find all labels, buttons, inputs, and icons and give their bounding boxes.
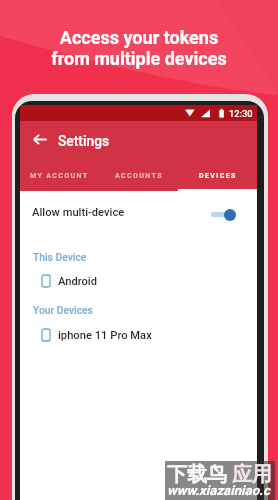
staticText: MY ACCOUNT	[30, 172, 89, 180]
staticText: Allow multi-device	[32, 206, 125, 219]
staticText: iphone 11 Pro Max	[58, 329, 152, 342]
staticText: 12:30	[229, 108, 253, 119]
button[interactable]: Back	[26, 128, 52, 154]
button[interactable]: iphone 11 Pro Max	[20, 328, 257, 342]
staticText: DEVICES	[199, 172, 237, 180]
staticText: ACCOUNTS	[115, 172, 163, 180]
button[interactable]: Allow multi-device	[20, 191, 257, 233]
staticText: www.xiazainiao.com	[167, 483, 277, 500]
button[interactable]: MY ACCOUNT	[20, 160, 99, 191]
button[interactable]: Android	[20, 274, 257, 288]
staticText: Access your tokens from multiple devices	[51, 27, 227, 70]
staticText: This Device	[33, 251, 87, 263]
staticText: 应用	[232, 462, 272, 487]
staticText: 下载鸟	[167, 462, 227, 487]
button[interactable]: ACCOUNTS	[99, 160, 178, 191]
staticText: Android	[58, 275, 98, 288]
button[interactable]: DEVICES	[178, 160, 257, 191]
staticText: Your Devices	[33, 304, 93, 316]
staticText: Settings	[58, 133, 110, 149]
